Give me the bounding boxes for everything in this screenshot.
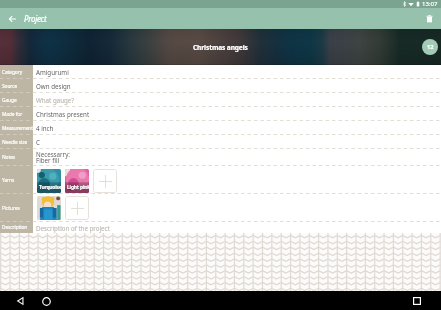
button[interactable]: Turquoise (37, 169, 61, 193)
staticText: Gauge (2, 97, 17, 104)
button[interactable]: 4 inch (33, 121, 441, 135)
button[interactable]: What gauge? (33, 93, 441, 107)
staticText: Own design (36, 82, 71, 90)
staticText: 13:07 (422, 0, 438, 8)
button[interactable]: Project picture (37, 196, 61, 220)
button[interactable]: Needle size (0, 135, 33, 149)
button[interactable]: Source (0, 79, 33, 93)
staticText: Needle size (2, 139, 28, 146)
button[interactable]: Gauge (0, 93, 33, 107)
button[interactable]: Amigurumi (33, 65, 441, 79)
button[interactable]: Necessarry: Fiber fill (33, 149, 441, 166)
button[interactable]: Made for (0, 107, 33, 121)
button[interactable]: Yarns (0, 166, 33, 194)
staticText: Project (24, 13, 47, 24)
button[interactable]: Light pink (65, 169, 89, 193)
staticText: Amigurumi (36, 68, 69, 76)
staticText: Made for (2, 111, 23, 118)
staticText: Description of the project (36, 224, 110, 232)
staticText: Christmas present (36, 110, 90, 118)
button[interactable]: Christmas present (33, 107, 441, 121)
button[interactable]: 12 (422, 39, 438, 55)
button[interactable]: Back (12, 293, 28, 309)
button[interactable]: Add (93, 169, 117, 193)
staticText: Necessarry: Fiber fill (36, 150, 70, 165)
button[interactable]: Measurements (0, 121, 33, 135)
staticText: 12 (427, 43, 434, 51)
button[interactable]: C (33, 135, 441, 149)
button[interactable]: Pictures (0, 194, 33, 222)
staticText: Christmas angels (193, 43, 248, 52)
staticText: Light pink (67, 184, 89, 191)
staticText: C (36, 138, 40, 146)
button[interactable]: Notes (0, 149, 33, 166)
staticText: Pictures (2, 205, 20, 212)
button[interactable]: Add (65, 196, 89, 220)
staticText: Turquoise (39, 184, 61, 191)
staticText: 4 inch (36, 124, 54, 132)
button[interactable]: Navigate up (5, 11, 20, 26)
button[interactable]: Home (38, 293, 54, 309)
staticText: Description (2, 224, 28, 231)
button[interactable]: Description of the project (33, 222, 441, 233)
staticText: Notes (2, 154, 16, 161)
button[interactable]: Own design (33, 79, 441, 93)
button[interactable]: Delete (422, 11, 437, 26)
button[interactable]: Recent apps (409, 293, 425, 309)
staticText: Yarns (2, 177, 15, 184)
staticText: Measurements (2, 125, 33, 132)
button[interactable]: Category (0, 65, 33, 79)
staticText: Category (2, 69, 23, 76)
staticText: Source (2, 83, 18, 90)
staticText: What gauge? (36, 96, 74, 104)
button[interactable]: Description (0, 222, 33, 233)
